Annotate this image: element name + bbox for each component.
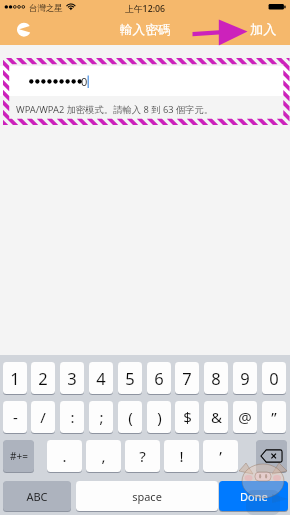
button[interactable]: 0 <box>0 66 290 96</box>
button[interactable]: 2 <box>31 362 55 394</box>
button[interactable]: 7 <box>175 362 199 394</box>
button[interactable]: 5 <box>118 362 142 394</box>
staticText: ( <box>128 407 133 427</box>
staticText: 8 <box>211 367 221 389</box>
staticText: 5 <box>125 367 135 389</box>
staticText: ) <box>157 407 162 427</box>
button[interactable]: ) <box>147 401 171 433</box>
staticText: ! <box>179 446 184 466</box>
staticText: 9 <box>240 367 250 389</box>
button[interactable]: ! <box>164 440 199 472</box>
button[interactable]: space <box>76 481 218 511</box>
button[interactable]: , <box>86 440 121 472</box>
staticText: WPA/WPA2 加密模式。請輸入 8 到 63 個字元。 <box>16 103 214 116</box>
staticText: 7 <box>182 367 192 389</box>
staticText: 3 <box>67 367 77 389</box>
staticText: 4 <box>96 367 106 389</box>
staticText: @ <box>238 407 252 427</box>
button[interactable]: ABC <box>3 481 71 511</box>
button[interactable]: $ <box>175 401 199 433</box>
staticText: : <box>70 407 75 427</box>
staticText: ? <box>139 446 146 466</box>
staticText: 0 <box>269 367 279 389</box>
button[interactable]: #+= <box>3 440 34 472</box>
button[interactable]: : <box>60 401 84 433</box>
staticText: , <box>101 446 106 466</box>
staticText: 輸入密碼 <box>120 22 171 38</box>
button[interactable]: & <box>204 401 228 433</box>
button[interactable]: 4 <box>89 362 113 394</box>
button[interactable]: Back <box>16 22 32 38</box>
staticText: 6 <box>154 367 164 389</box>
staticText: ; <box>99 407 104 427</box>
button[interactable]: ; <box>89 401 113 433</box>
staticText: 2 <box>38 367 48 389</box>
staticText: $ <box>183 407 192 427</box>
staticText: . <box>62 446 67 466</box>
button[interactable]: Backspace <box>256 440 287 472</box>
button[interactable]: ” <box>262 401 286 433</box>
button[interactable]: Done <box>219 481 288 511</box>
button[interactable]: . <box>47 440 82 472</box>
staticText: 0 <box>81 74 88 89</box>
button[interactable]: ? <box>125 440 160 472</box>
button[interactable]: - <box>3 401 27 433</box>
staticText: / <box>40 407 46 427</box>
button[interactable]: 3 <box>60 362 84 394</box>
staticText: 上午12:06 <box>125 3 166 15</box>
button[interactable]: ( <box>118 401 142 433</box>
staticText: & <box>211 407 222 427</box>
button[interactable]: 9 <box>233 362 257 394</box>
staticText: 台灣之星 <box>29 3 63 14</box>
button[interactable]: / <box>31 401 55 433</box>
staticText: Done <box>240 489 268 504</box>
button[interactable]: 1 <box>3 362 27 394</box>
button[interactable]: 0 <box>262 362 286 394</box>
staticText: ” <box>271 407 277 427</box>
button[interactable]: 8 <box>204 362 228 394</box>
staticText: #+= <box>10 449 28 463</box>
button[interactable]: ’ <box>203 440 238 472</box>
staticText: space <box>132 489 162 504</box>
staticText: 加入 <box>250 21 277 38</box>
button[interactable]: 加入 <box>250 21 277 38</box>
button[interactable]: @ <box>233 401 257 433</box>
button[interactable]: 6 <box>147 362 171 394</box>
staticText: 1 <box>10 367 20 389</box>
staticText: ’ <box>219 446 222 466</box>
staticText: - <box>13 407 18 427</box>
staticText: ABC <box>26 489 48 504</box>
